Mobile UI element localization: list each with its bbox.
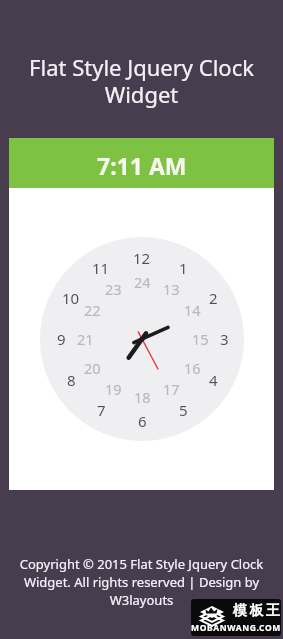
staticText: 4 [209, 370, 218, 390]
staticText: 24 [134, 272, 151, 292]
button[interactable]: Copyright © 2015 Flat Style Jquery Clock… [0, 555, 283, 609]
staticText: MOBANWANG.COM [191, 622, 281, 634]
staticText: 16 [184, 358, 201, 378]
staticText: 18 [134, 387, 151, 407]
staticText: 5 [179, 400, 188, 420]
staticText: Flat Style Jquery Clock Widget [0, 52, 283, 109]
staticText: 21 [77, 329, 94, 349]
staticText: 15 [192, 329, 209, 349]
button[interactable]: 模板王 [191, 599, 281, 636]
staticText: 12 [133, 248, 151, 268]
staticText: 13 [163, 279, 180, 299]
staticText: 19 [105, 379, 122, 399]
staticText: 9 [57, 329, 66, 349]
staticText: 7 [97, 400, 106, 420]
staticText: 10 [62, 288, 80, 308]
staticText: 1 [179, 258, 188, 278]
staticText: 17 [163, 379, 180, 399]
staticText: 23 [105, 279, 122, 299]
button[interactable]: 7:11 AM [9, 138, 274, 188]
staticText: 8 [67, 370, 76, 390]
staticText: 14 [184, 300, 201, 320]
staticText: 6 [138, 411, 147, 431]
staticText: 3 [220, 329, 229, 349]
staticText: 22 [84, 300, 101, 320]
staticText: 7:11 AM [97, 150, 187, 181]
staticText: 11 [92, 258, 110, 278]
staticText: 20 [84, 358, 101, 378]
staticText: 模板王 [233, 602, 281, 620]
staticText: 2 [209, 288, 218, 308]
